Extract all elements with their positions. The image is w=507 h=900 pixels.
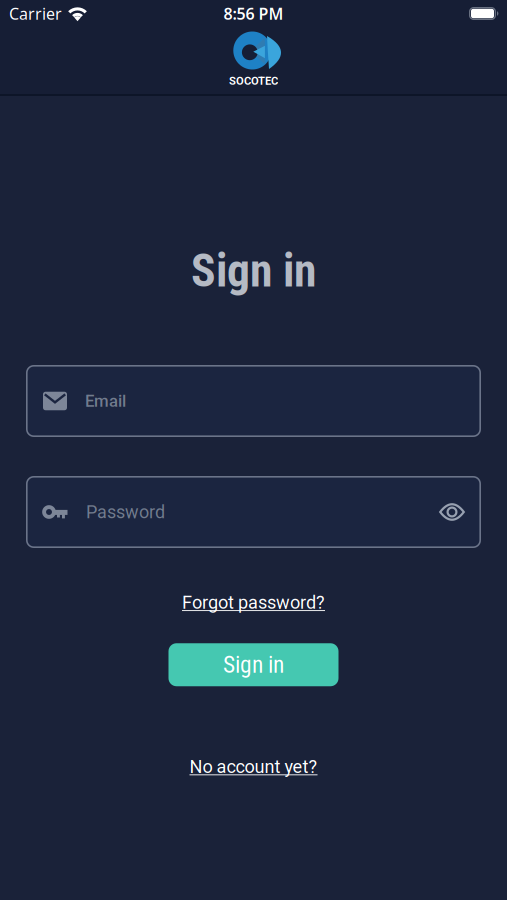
staticText: Email: [85, 391, 126, 411]
staticText: SOCOTEC: [229, 74, 278, 87]
staticText: Sign in: [223, 651, 284, 678]
button[interactable]: Password: [26, 476, 481, 548]
staticText: 8:56 PM: [223, 3, 283, 24]
staticText: Password: [86, 501, 165, 523]
staticText: Sign in: [191, 244, 316, 298]
staticText: No account yet?: [189, 756, 317, 777]
button[interactable]: No account yet?: [189, 756, 317, 777]
button[interactable]: Forgot password?: [182, 592, 325, 613]
staticText: Forgot password?: [182, 592, 325, 613]
button[interactable]: Show password: [439, 503, 481, 521]
staticText: Carrier: [9, 3, 62, 24]
button[interactable]: Sign in: [168, 643, 338, 686]
button[interactable]: Email: [26, 365, 481, 437]
